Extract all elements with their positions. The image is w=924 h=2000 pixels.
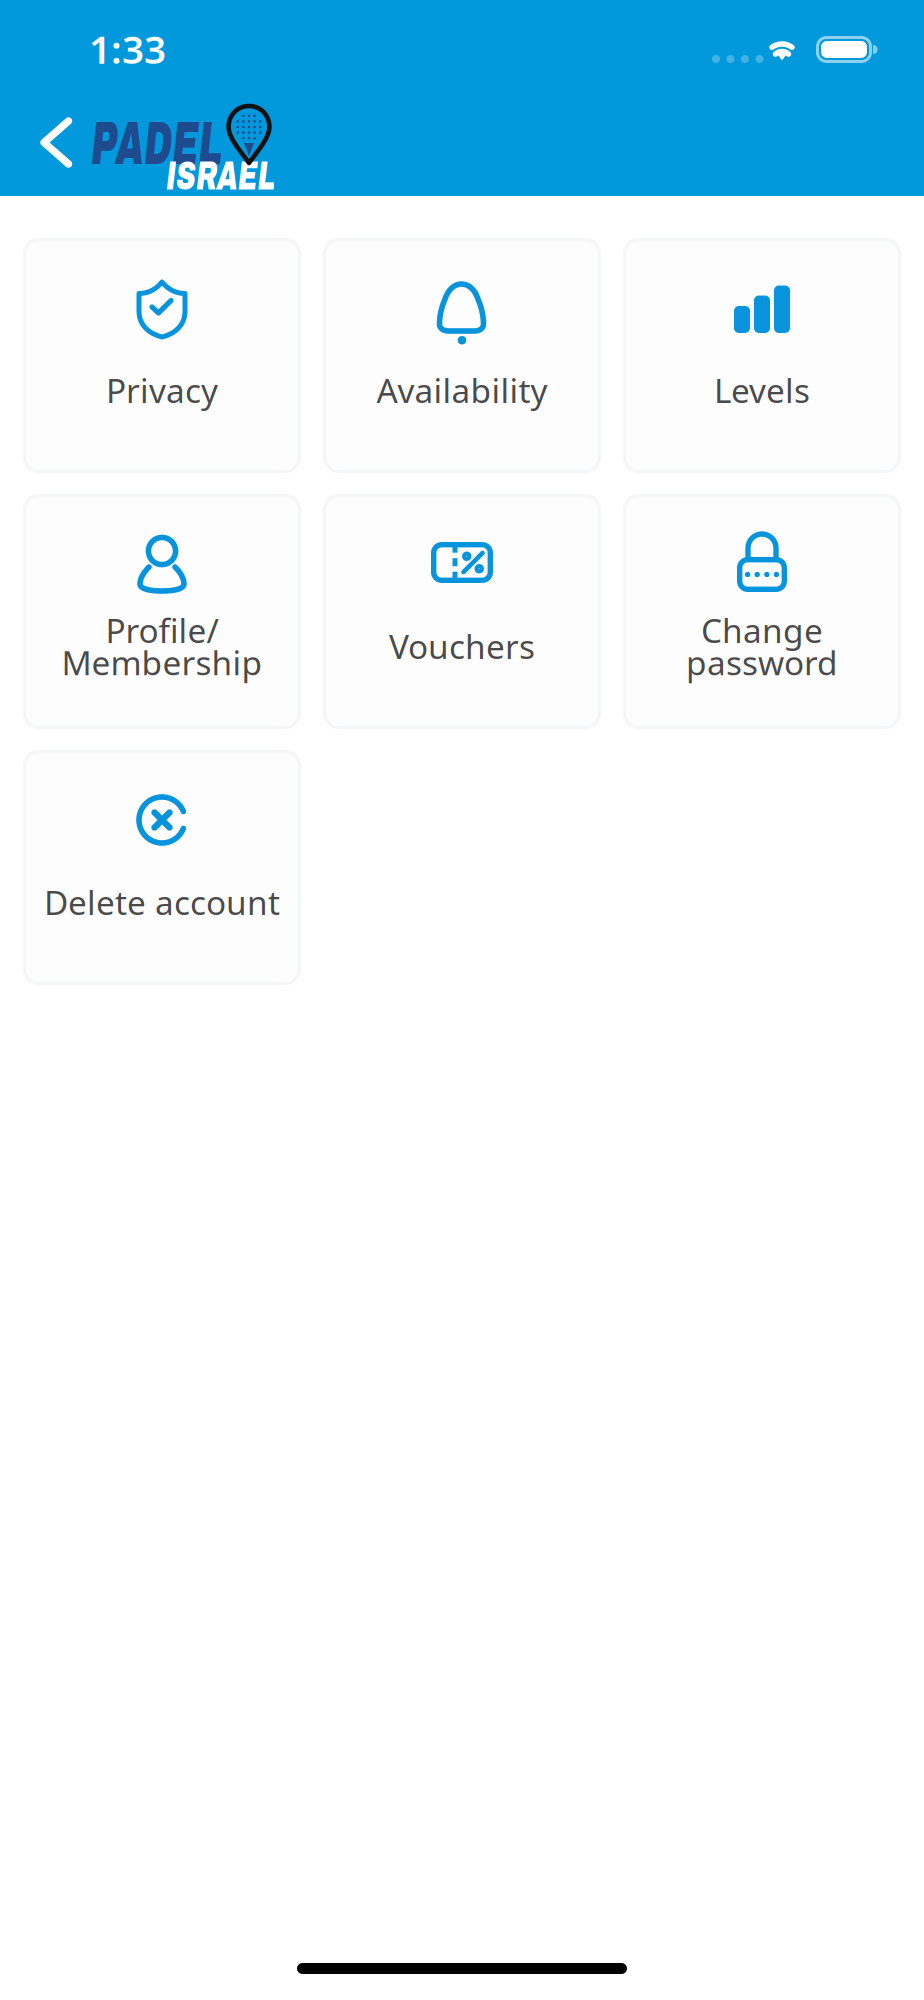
button[interactable]: Availability	[323, 238, 601, 473]
button[interactable]: Change	[623, 494, 901, 729]
button[interactable]: Back	[18, 93, 95, 192]
staticText: Privacy	[106, 368, 218, 412]
staticText: Availability	[376, 368, 547, 412]
staticText: Profile/	[105, 608, 218, 652]
staticText: Membership	[61, 640, 262, 685]
button[interactable]: Levels	[623, 238, 901, 473]
button[interactable]: Profile/	[23, 494, 301, 729]
staticText: Delete account	[44, 880, 280, 924]
staticText: ISRAEL	[166, 154, 371, 209]
button[interactable]: Delete account	[23, 750, 301, 985]
staticText: Vouchers	[389, 624, 535, 668]
button[interactable]: Privacy	[23, 238, 301, 473]
staticText: PADEL	[91, 111, 342, 186]
staticText: password	[686, 640, 838, 685]
staticText: Levels	[714, 368, 810, 412]
button[interactable]: Vouchers	[323, 494, 601, 729]
staticText: Change	[701, 608, 823, 652]
staticText: 1:33	[89, 23, 166, 74]
